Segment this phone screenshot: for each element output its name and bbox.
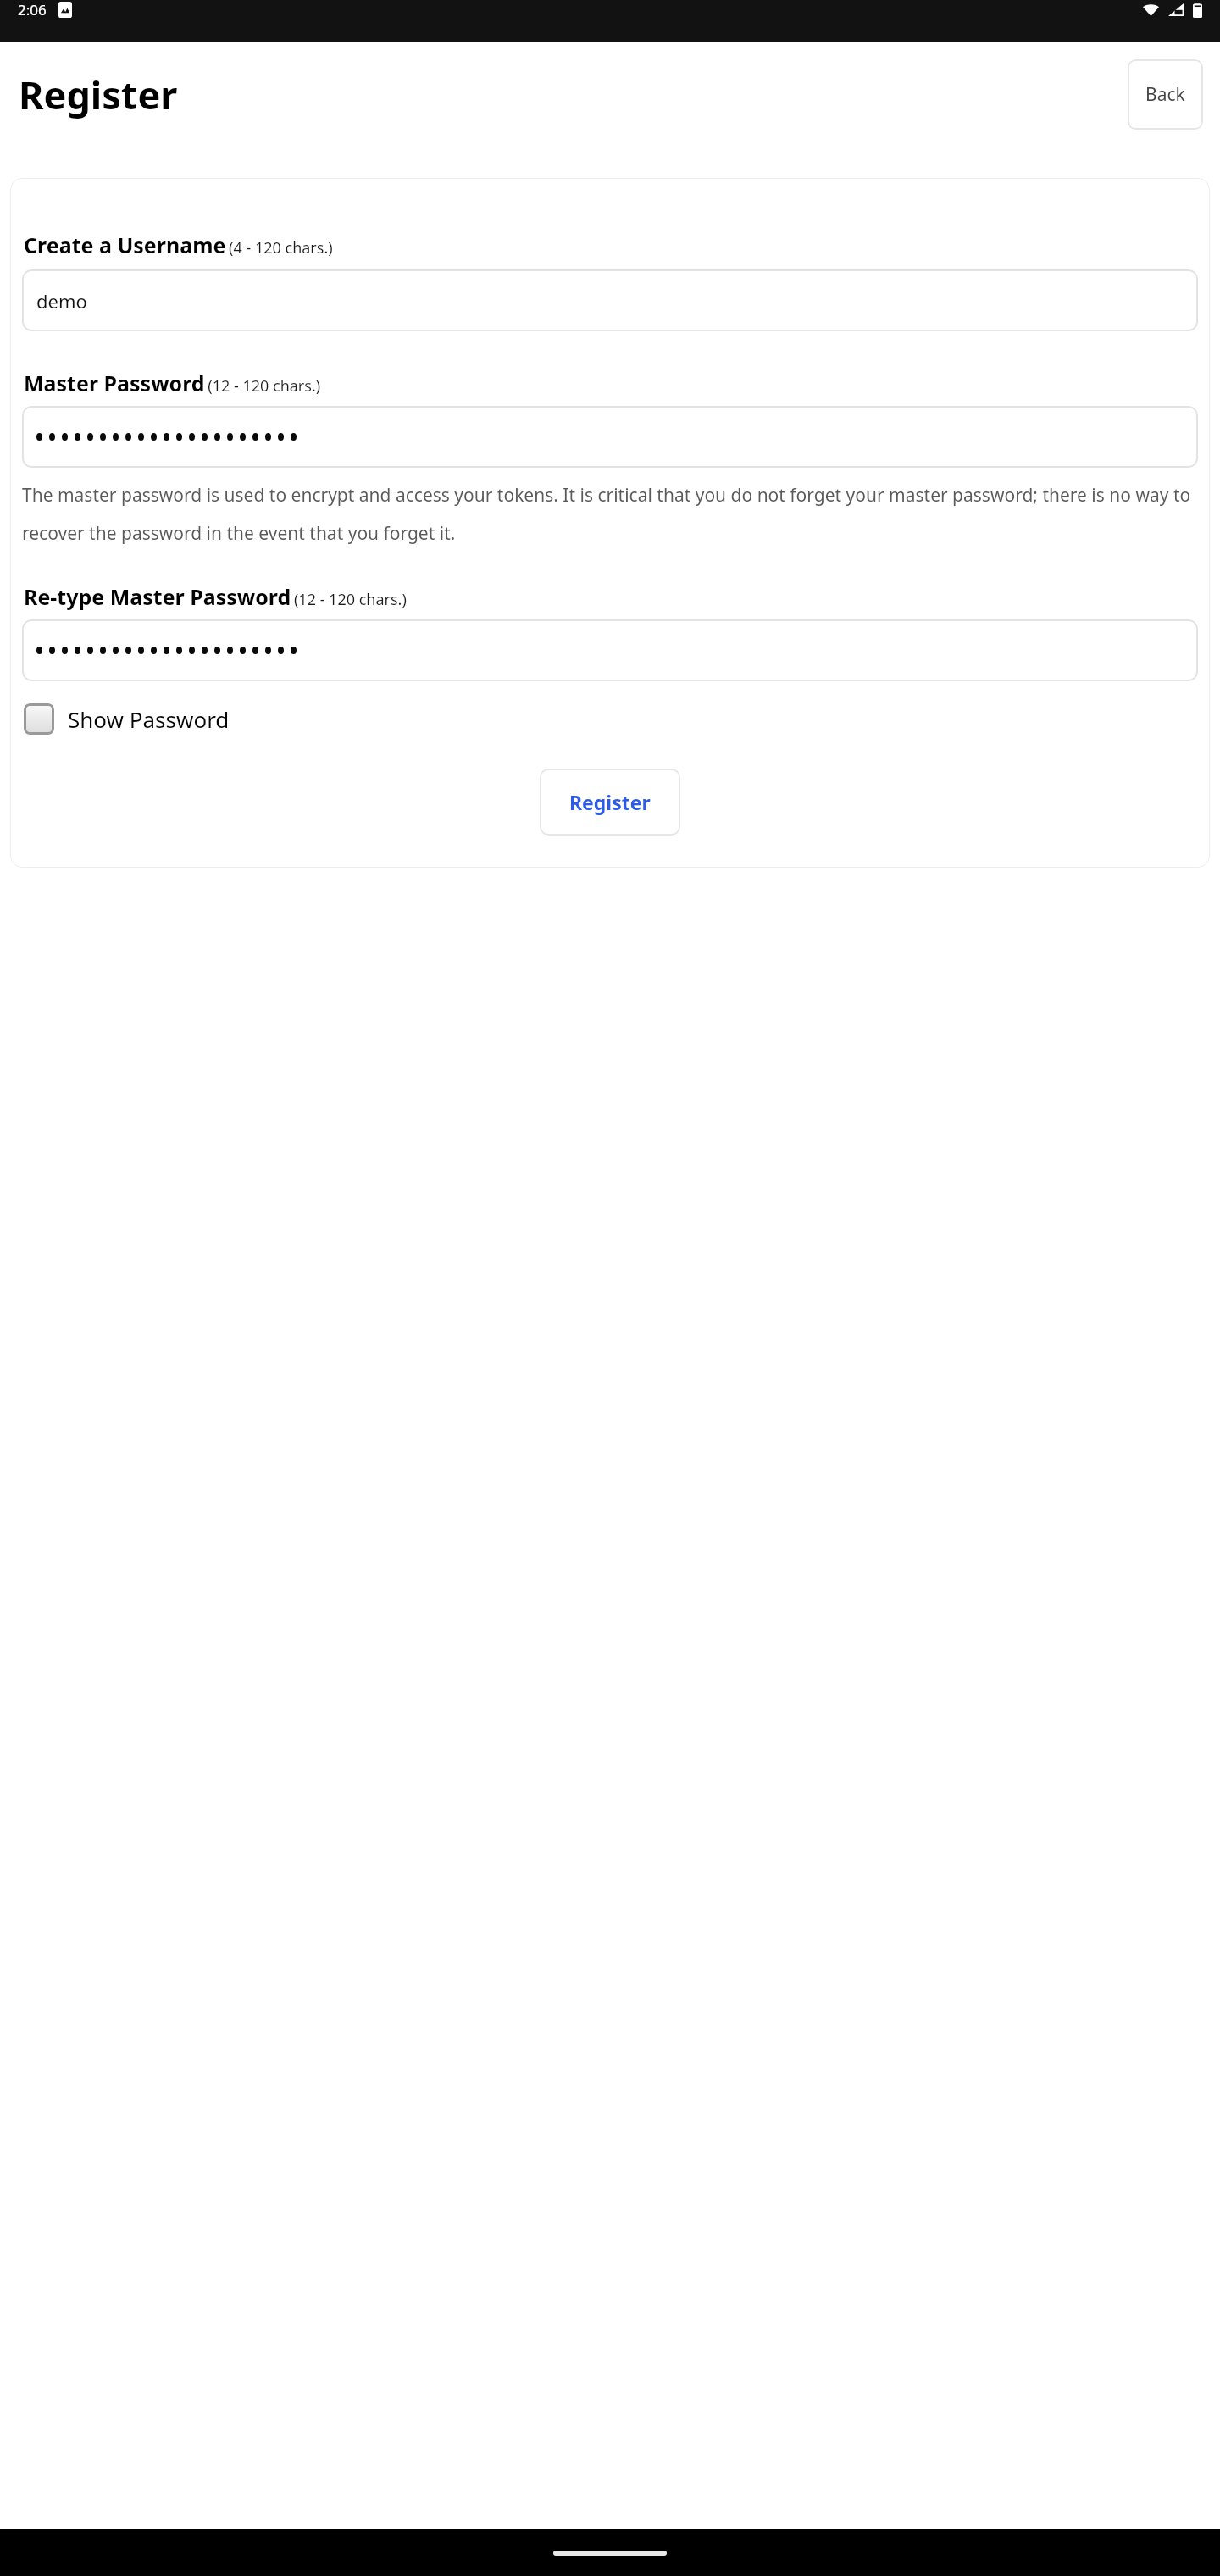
button[interactable]: Show Password — [22, 700, 236, 738]
button[interactable]: Register — [540, 769, 680, 836]
staticText: Re-type Master Password (12 - 120 chars.… — [24, 582, 407, 611]
button[interactable]: demo — [22, 269, 1198, 331]
staticText: demo — [36, 288, 87, 314]
button[interactable] — [22, 406, 1198, 468]
button[interactable] — [22, 619, 1198, 681]
staticText: Create a Username (4 - 120 chars.) — [24, 230, 333, 259]
staticText: The master password is used to encrypt a… — [22, 483, 1193, 545]
staticText: Show Password — [68, 704, 230, 734]
staticText: Register — [19, 69, 178, 120]
staticText: Master Password (12 - 120 chars.) — [24, 369, 321, 397]
staticText: Register — [569, 789, 651, 815]
button[interactable]: Back — [1128, 59, 1203, 130]
staticText: Back — [1145, 82, 1185, 107]
staticText: 2:06 — [18, 0, 47, 19]
